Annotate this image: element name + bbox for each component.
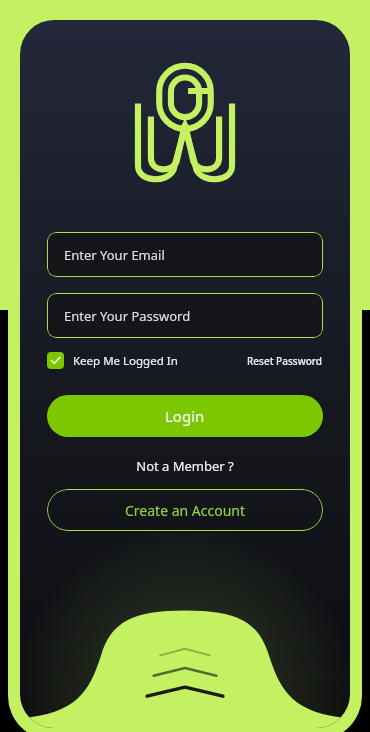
staticText: Reset Password: [247, 354, 323, 368]
staticText: Create an Account: [125, 501, 246, 520]
button[interactable]: Enter Your Email: [47, 232, 323, 277]
staticText: Enter Your Password: [64, 307, 191, 325]
other: Logo: [129, 62, 241, 188]
staticText: Keep Me Logged In: [73, 353, 178, 369]
button[interactable]: Swipe up: [20, 608, 350, 728]
button[interactable]: Keep Me Logged In: [47, 352, 178, 369]
button[interactable]: Enter Your Password: [47, 293, 323, 338]
button[interactable]: Reset Password: [247, 354, 323, 368]
staticText: Login: [165, 406, 205, 426]
button[interactable]: Login: [47, 395, 323, 437]
staticText: Enter Your Email: [64, 246, 165, 264]
staticText: Not a Member ?: [136, 457, 234, 475]
button[interactable]: Create an Account: [47, 489, 323, 531]
